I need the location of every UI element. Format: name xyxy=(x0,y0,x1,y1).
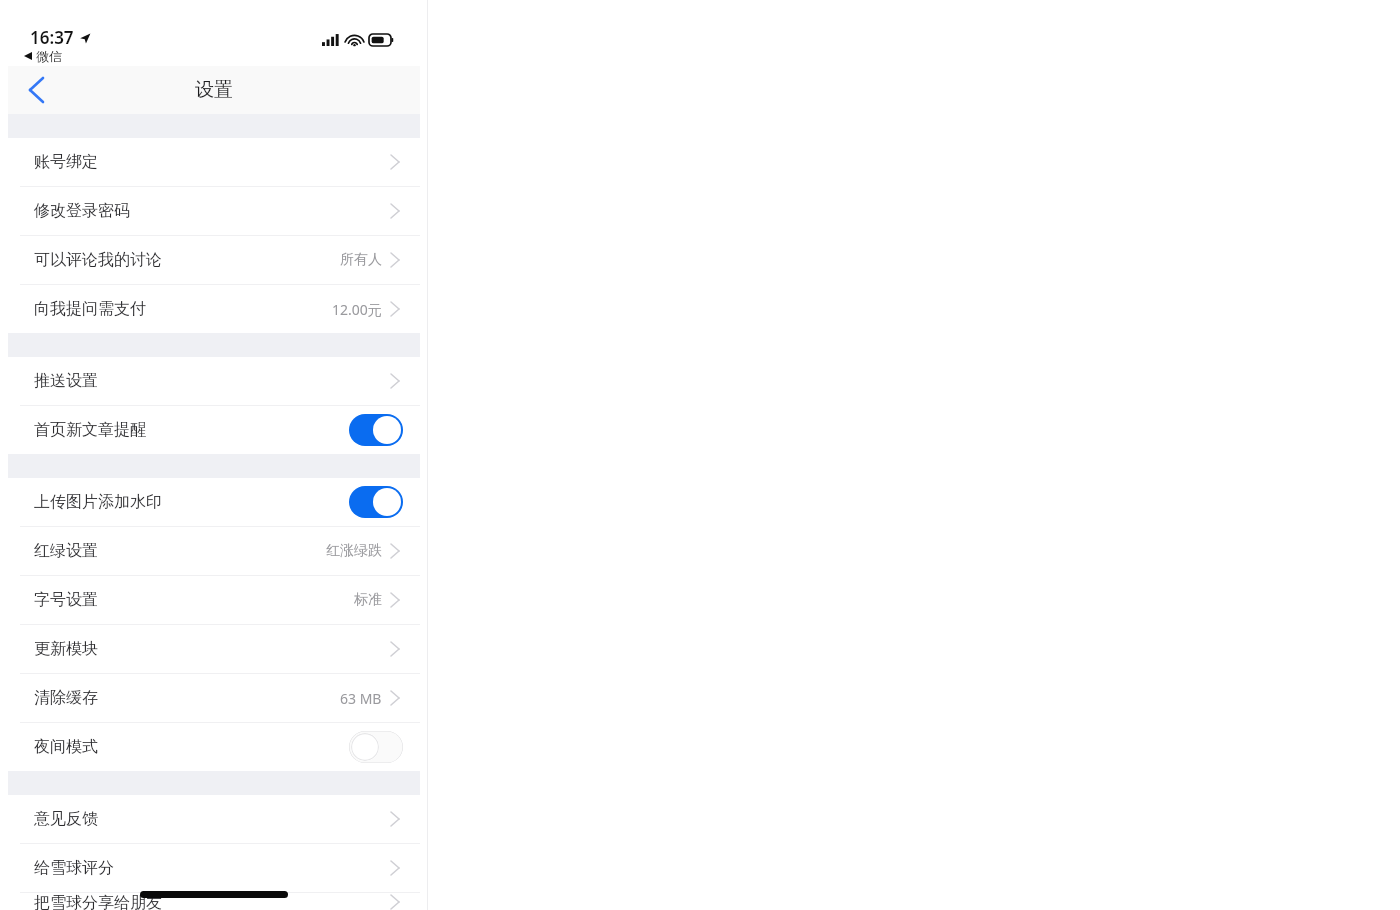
button[interactable]: 字号设置 xyxy=(8,576,420,624)
staticText: 所有人 xyxy=(340,251,382,269)
staticText: 16:37 xyxy=(30,26,74,49)
button[interactable]: 修改登录密码 xyxy=(8,187,420,235)
button[interactable]: 首页新文章提醒 xyxy=(8,406,420,454)
button[interactable]: 可以评论我的讨论 xyxy=(8,236,420,284)
button[interactable]: Back xyxy=(8,66,64,114)
staticText: 推送设置 xyxy=(34,371,98,391)
staticText: 首页新文章提醒 xyxy=(34,420,146,440)
button[interactable]: Toggle off xyxy=(348,730,404,764)
button[interactable]: 给雪球评分 xyxy=(8,844,420,892)
staticText: 微信 xyxy=(36,48,62,64)
staticText: 把雪球分享给朋友 xyxy=(34,893,162,910)
staticText: 可以评论我的讨论 xyxy=(34,250,162,270)
staticText: 上传图片添加水印 xyxy=(34,492,162,512)
button[interactable]: 意见反馈 xyxy=(8,795,420,843)
button[interactable]: 把雪球分享给朋友 xyxy=(8,893,420,910)
staticText: 红涨绿跌 xyxy=(326,542,382,560)
staticText: 设置 xyxy=(195,78,233,102)
staticText: 更新模块 xyxy=(34,639,98,659)
button[interactable]: 上传图片添加水印 xyxy=(8,478,420,526)
button[interactable]: Toggle on xyxy=(348,413,404,447)
staticText: 意见反馈 xyxy=(34,809,98,829)
staticText: 红绿设置 xyxy=(34,541,98,561)
staticText: 字号设置 xyxy=(34,590,98,610)
staticText: 标准 xyxy=(354,591,382,609)
staticText: 12.00元 xyxy=(332,300,382,319)
staticText: 63 MB xyxy=(340,689,382,708)
button[interactable]: 红绿设置 xyxy=(8,527,420,575)
staticText: 给雪球评分 xyxy=(34,858,114,878)
button[interactable]: Toggle on xyxy=(348,485,404,519)
staticText: 账号绑定 xyxy=(34,152,98,172)
button[interactable]: 账号绑定 xyxy=(8,138,420,186)
button[interactable]: 更新模块 xyxy=(8,625,420,673)
button[interactable]: 向我提问需支付 xyxy=(8,285,420,333)
staticText: 夜间模式 xyxy=(34,737,98,757)
button[interactable]: 推送设置 xyxy=(8,357,420,405)
staticText: 修改登录密码 xyxy=(34,201,130,221)
staticText: 向我提问需支付 xyxy=(34,299,146,319)
button[interactable]: 清除缓存 xyxy=(8,674,420,722)
staticText: 清除缓存 xyxy=(34,688,98,708)
button[interactable]: 夜间模式 xyxy=(8,723,420,771)
